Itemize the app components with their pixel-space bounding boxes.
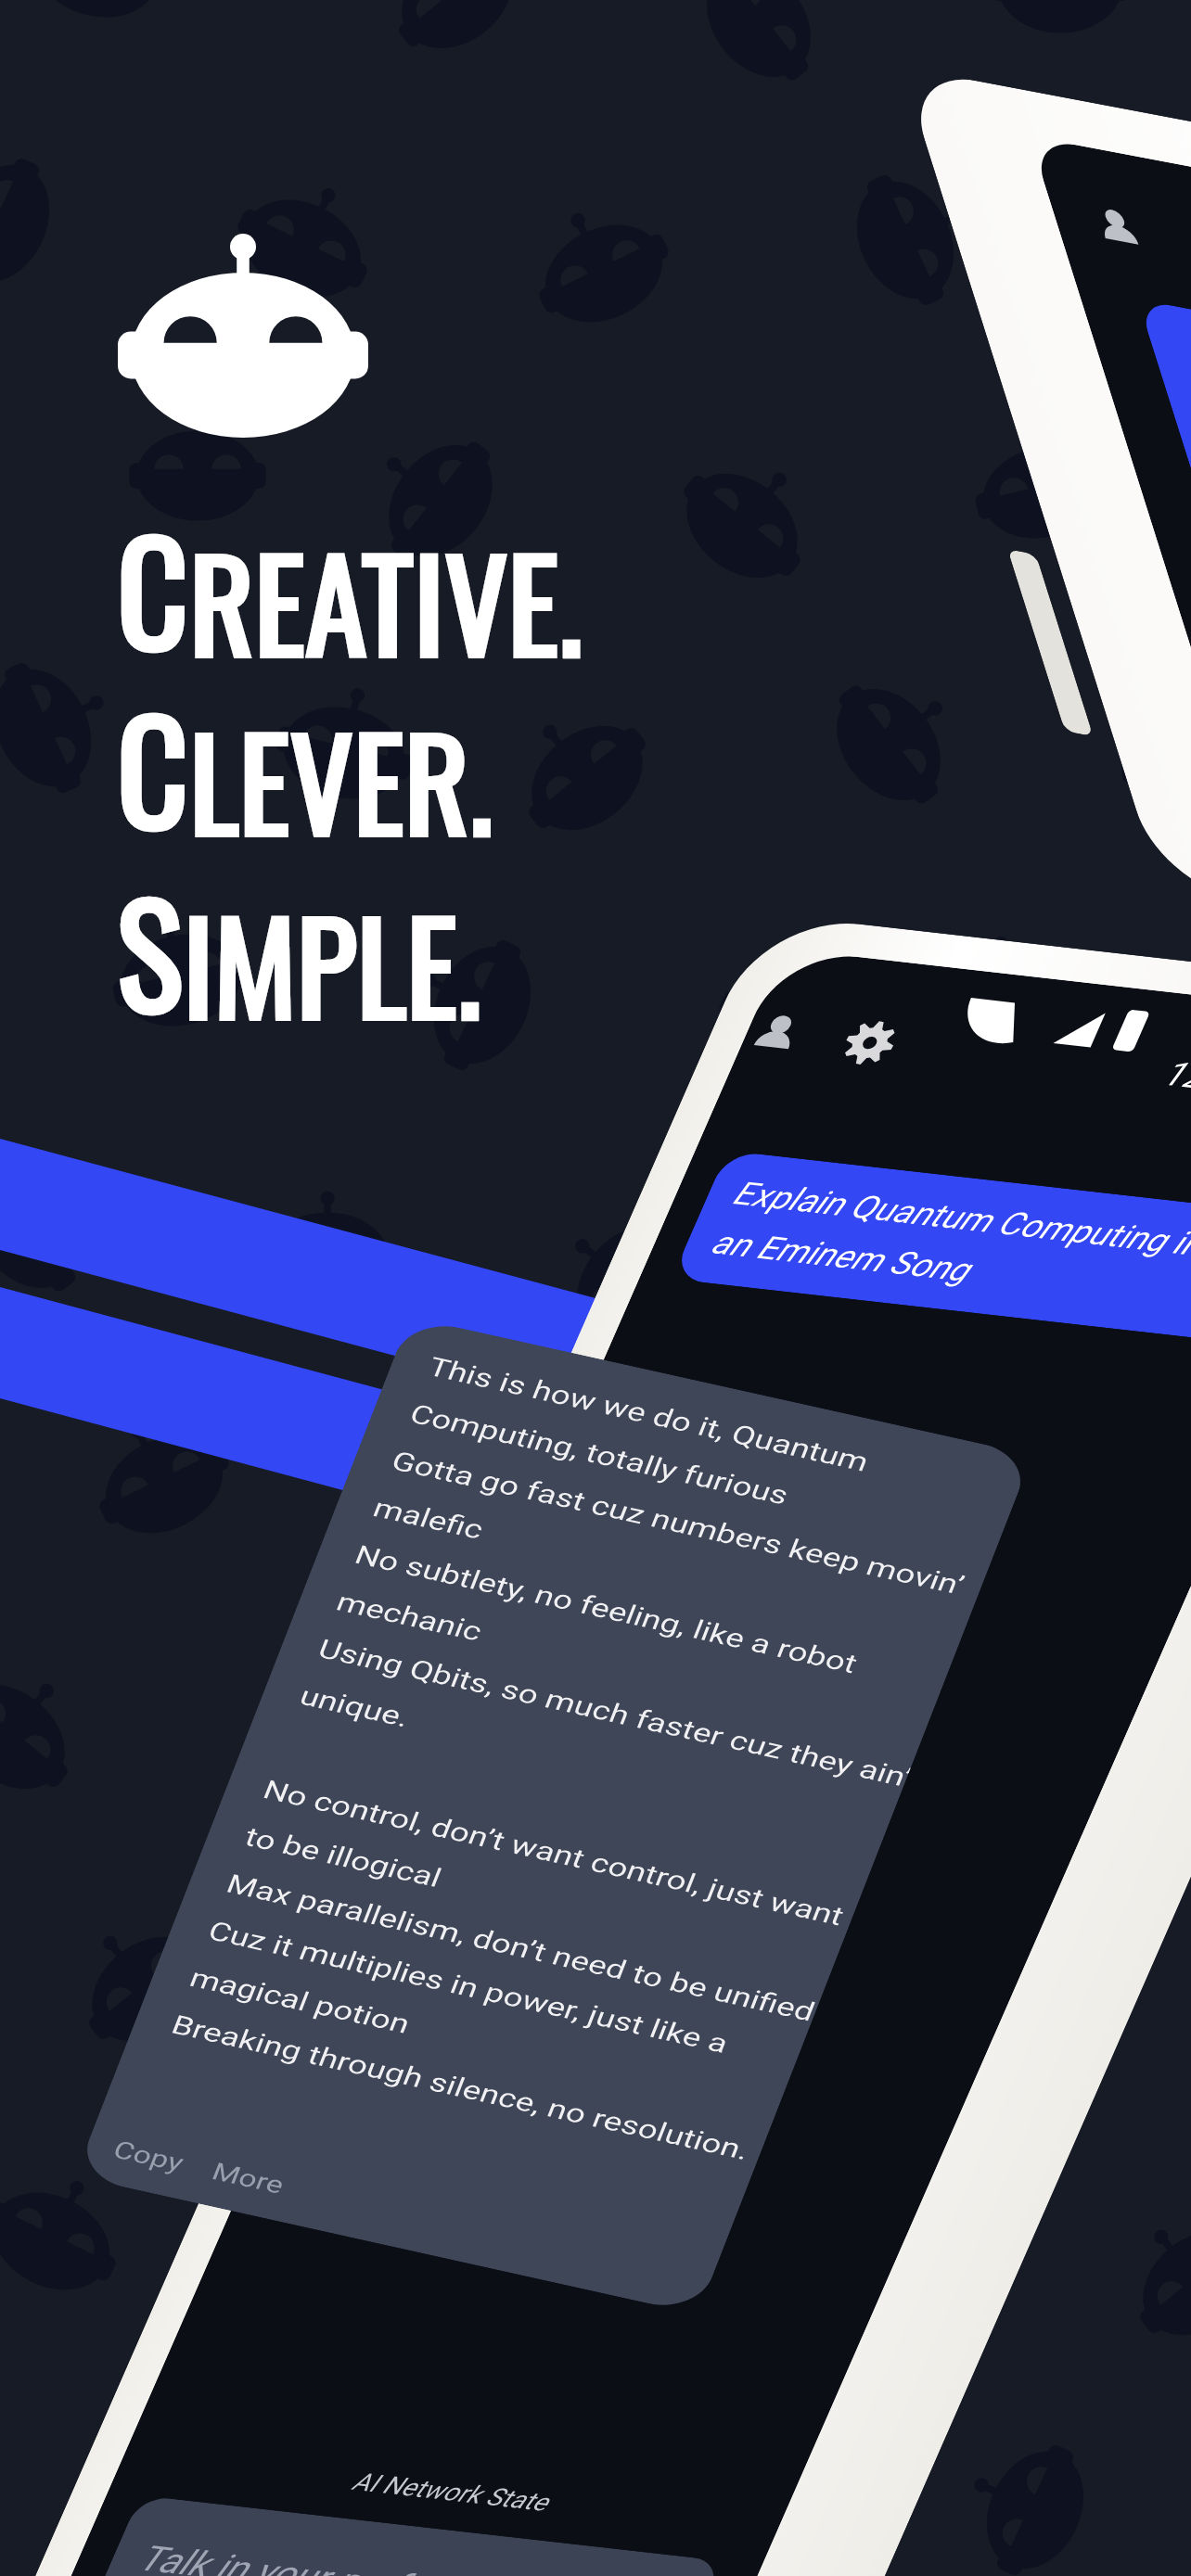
staticText: IMPLE. (183, 870, 481, 1055)
button[interactable]: Explain Quantum Computing in a form of a… (671, 1150, 1191, 1349)
button[interactable]: Profile (734, 1005, 820, 1069)
button[interactable]: This is how we do it, Quantum Computing,… (75, 1317, 1033, 2314)
staticText: C (117, 663, 189, 869)
staticText: LEVER. (189, 686, 493, 872)
button[interactable]: Profile (1083, 198, 1154, 261)
staticText: Explain Quantum Computing in a form of a… (705, 1174, 1191, 1328)
button[interactable]: Profile (902, 67, 1191, 1046)
button[interactable]: More (199, 2150, 298, 2206)
staticText: 12:30 (1156, 1053, 1191, 1102)
button[interactable]: Settings (827, 1011, 913, 1075)
button[interactable]: Copy (100, 2128, 197, 2184)
staticText: Talk in your preferred language (132, 2537, 659, 2576)
staticText: C (117, 484, 189, 690)
staticText: REATIVE. (189, 507, 583, 693)
button[interactable]: Profile (0, 913, 1191, 2576)
other: App logo (0, 0, 1191, 2576)
staticText: S (117, 847, 183, 1052)
button[interactable]: Talk in your preferred language (78, 2495, 723, 2576)
staticText: This is how we do it, Quantum Computing,… (167, 1352, 1022, 2169)
staticText: AI Network State (348, 2467, 554, 2517)
